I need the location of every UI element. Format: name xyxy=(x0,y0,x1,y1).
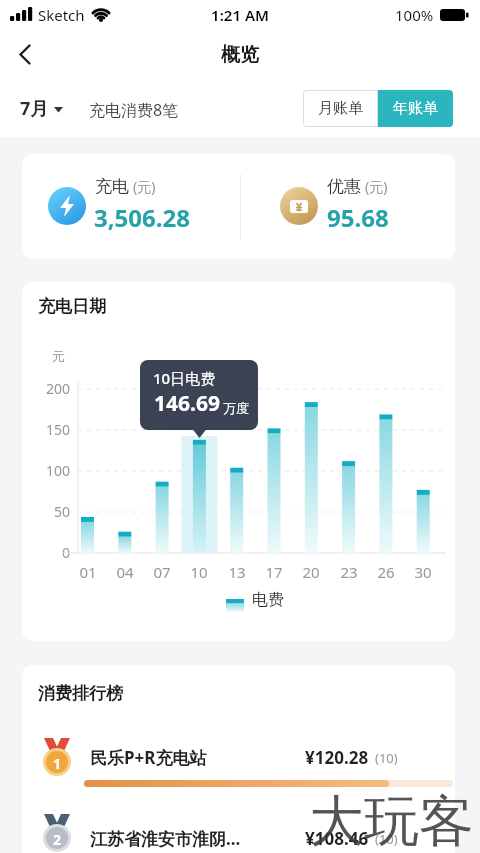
button[interactable]: 月账单 xyxy=(303,90,378,127)
staticText: 07 xyxy=(147,562,177,582)
staticText: 消费排行榜 xyxy=(38,683,123,704)
staticText: 150 xyxy=(30,420,70,439)
staticText: 优惠 xyxy=(327,176,361,197)
staticText: 1 xyxy=(35,754,79,773)
staticText: (元) xyxy=(365,177,388,196)
staticText: 万度 xyxy=(223,400,249,416)
staticText: 30 xyxy=(408,562,438,582)
staticText: 江苏省淮安市淮阴... xyxy=(90,827,241,850)
staticText: 01 xyxy=(73,562,103,582)
staticText: 概览 xyxy=(221,43,259,67)
staticText: 200 xyxy=(30,379,70,398)
staticText: 23 xyxy=(334,562,364,582)
staticText: 年账单 xyxy=(393,99,438,118)
staticText: 2 xyxy=(35,830,79,849)
staticText: Sketch xyxy=(38,5,85,25)
staticText: 04 xyxy=(110,562,140,582)
staticText: 100 xyxy=(30,461,70,480)
staticText: 7月 xyxy=(20,96,49,121)
staticText: 10 xyxy=(184,562,214,582)
staticText: 95.68 xyxy=(327,201,389,234)
staticText: 民乐P+R充电站 xyxy=(90,746,207,769)
staticText: 3,506.28 xyxy=(94,201,190,234)
staticText: 26 xyxy=(371,562,401,582)
staticText: 月账单 xyxy=(318,99,363,118)
button[interactable] xyxy=(0,30,48,78)
button[interactable]: 2 xyxy=(22,805,455,853)
button[interactable]: 年账单 xyxy=(378,90,453,127)
staticText: 146.69 xyxy=(154,389,220,418)
staticText: (元) xyxy=(133,177,156,196)
staticText: 元 xyxy=(52,348,65,364)
staticText: 充电消费8笔 xyxy=(89,99,179,121)
staticText: 电费 xyxy=(252,590,284,610)
button[interactable]: 7月 xyxy=(20,80,64,137)
staticText: (10) xyxy=(375,830,398,848)
staticText: 20 xyxy=(296,562,326,582)
staticText: 大玩客 xyxy=(309,787,474,853)
staticText: 13 xyxy=(222,562,252,582)
staticText: 17 xyxy=(259,562,289,582)
staticText: (10) xyxy=(375,749,398,767)
staticText: 50 xyxy=(30,502,70,521)
staticText: 充电 xyxy=(95,176,129,197)
staticText: 1:21 AM xyxy=(0,5,480,25)
staticText: ¥120.28 xyxy=(305,746,369,769)
staticText: 0 xyxy=(30,543,70,562)
staticText: 100% xyxy=(395,5,434,25)
staticText: 充电日期 xyxy=(38,296,106,317)
staticText: ¥108.46 xyxy=(305,827,369,850)
staticText: 10日电费 xyxy=(153,368,216,388)
button[interactable]: 1 xyxy=(22,719,455,794)
